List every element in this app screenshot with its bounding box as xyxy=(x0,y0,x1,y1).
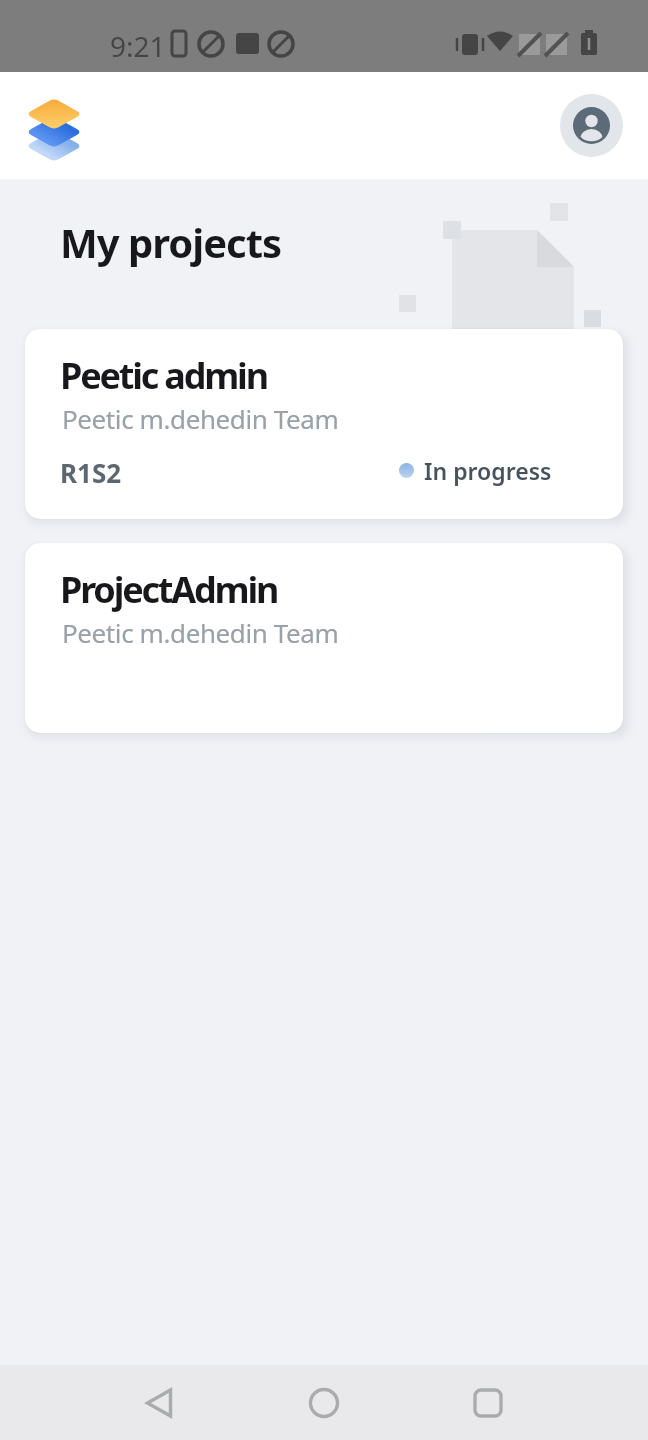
button[interactable] xyxy=(458,1373,518,1433)
button[interactable] xyxy=(22,94,86,158)
staticText: 9:21 xyxy=(110,27,166,65)
staticText: Peetic m.dehedin Team xyxy=(62,401,339,436)
staticText: Peetic admin xyxy=(60,351,267,400)
staticText: My projects xyxy=(60,215,282,269)
button[interactable]: In progress xyxy=(399,455,552,486)
button[interactable] xyxy=(560,94,623,157)
button[interactable] xyxy=(130,1373,190,1433)
button[interactable] xyxy=(294,1373,354,1433)
staticText: ProjectAdmin xyxy=(60,565,278,614)
button[interactable]: Peetic admin xyxy=(25,329,623,519)
staticText: R1S2 xyxy=(60,455,122,490)
staticText: In progress xyxy=(424,455,552,486)
button[interactable]: ProjectAdmin xyxy=(25,543,623,733)
staticText: Peetic m.dehedin Team xyxy=(62,615,339,650)
